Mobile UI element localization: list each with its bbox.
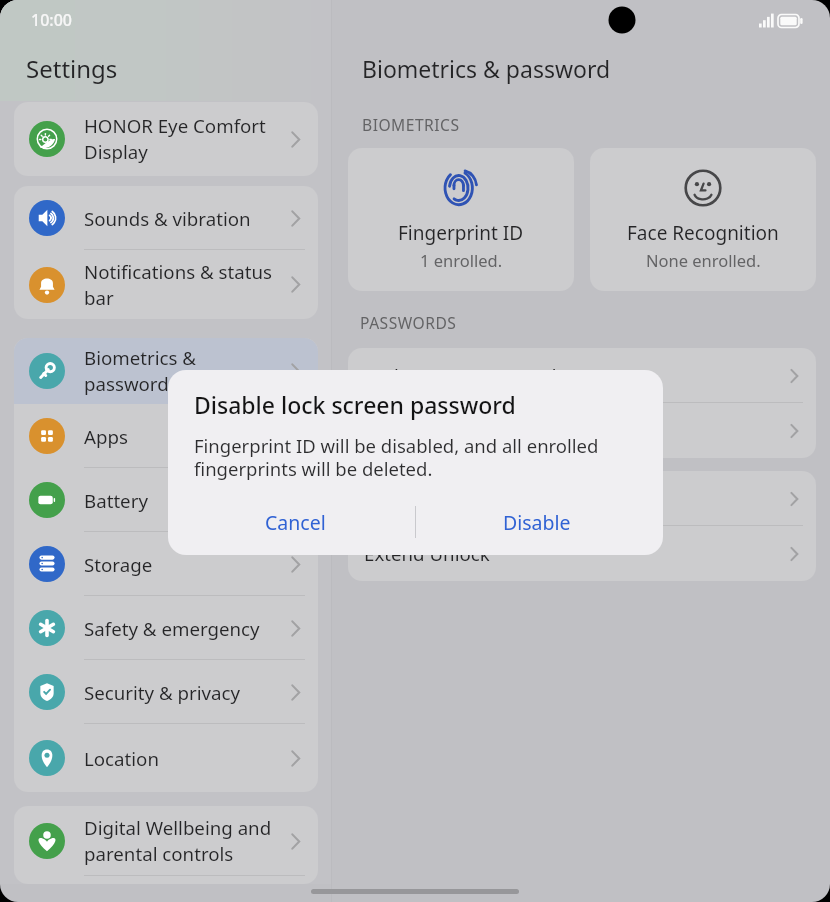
staticText: Notifications & status bar <box>84 259 286 311</box>
staticText: Face Unlock <box>364 486 786 511</box>
button[interactable]: Location <box>14 724 318 792</box>
staticText: Battery <box>84 488 286 513</box>
button[interactable]: Cancel <box>168 493 415 551</box>
staticText: 1 enrolled. <box>420 249 503 271</box>
staticText: None enrolled. <box>646 249 761 271</box>
button[interactable]: Fingerprint ID <box>348 148 574 291</box>
staticText: Face Recognition <box>627 220 779 246</box>
staticText: Apps <box>84 424 286 449</box>
staticText: Lock screen password <box>364 363 786 388</box>
button[interactable]: Safety & emergency <box>14 596 318 660</box>
button[interactable]: Battery <box>14 468 318 532</box>
staticText: Settings <box>26 52 118 85</box>
staticText: Biometrics & password <box>362 53 611 84</box>
staticText: Safety & emergency <box>84 616 286 641</box>
button[interactable]: Smart Lock <box>348 403 816 458</box>
button[interactable]: Disable <box>416 493 663 551</box>
staticText: Security & privacy <box>84 680 286 705</box>
button[interactable]: Apps <box>14 404 318 468</box>
button[interactable]: Extend Unlock <box>348 526 816 581</box>
button[interactable]: Digital Wellbeing and parental controls <box>14 806 318 876</box>
staticText: Smart Lock <box>364 418 786 443</box>
staticText: Biometrics & password <box>84 345 286 397</box>
button[interactable]: Notifications & status bar <box>14 250 318 319</box>
button[interactable]: HONOR Eye Comfort Display <box>14 102 318 176</box>
staticText: Extend Unlock <box>364 541 786 566</box>
staticText: BIOMETRICS <box>362 114 460 135</box>
staticText: Sounds & vibration <box>84 206 286 231</box>
button[interactable]: Lock screen password <box>348 348 816 403</box>
button[interactable]: Security & privacy <box>14 660 318 724</box>
staticText: HONOR Eye Comfort Display <box>84 113 286 165</box>
button[interactable]: Storage <box>14 532 318 596</box>
button[interactable]: Face Recognition <box>590 148 816 291</box>
staticText: Disable lock screen password <box>194 389 516 420</box>
staticText: 10:00 <box>31 9 72 31</box>
staticText: Disable <box>503 509 571 536</box>
staticText: Cancel <box>265 509 326 536</box>
staticText: Fingerprint ID will be disabled, and all… <box>194 433 599 481</box>
button[interactable]: Sounds & vibration <box>14 186 318 250</box>
staticText: Location <box>84 746 286 771</box>
staticText: Digital Wellbeing and parental controls <box>84 815 286 867</box>
button[interactable]: Face Unlock <box>348 471 816 526</box>
staticText: Storage <box>84 552 286 577</box>
staticText: PASSWORDS <box>360 312 457 333</box>
button[interactable]: Biometrics & password <box>14 338 318 404</box>
staticText: Fingerprint ID <box>398 220 524 246</box>
